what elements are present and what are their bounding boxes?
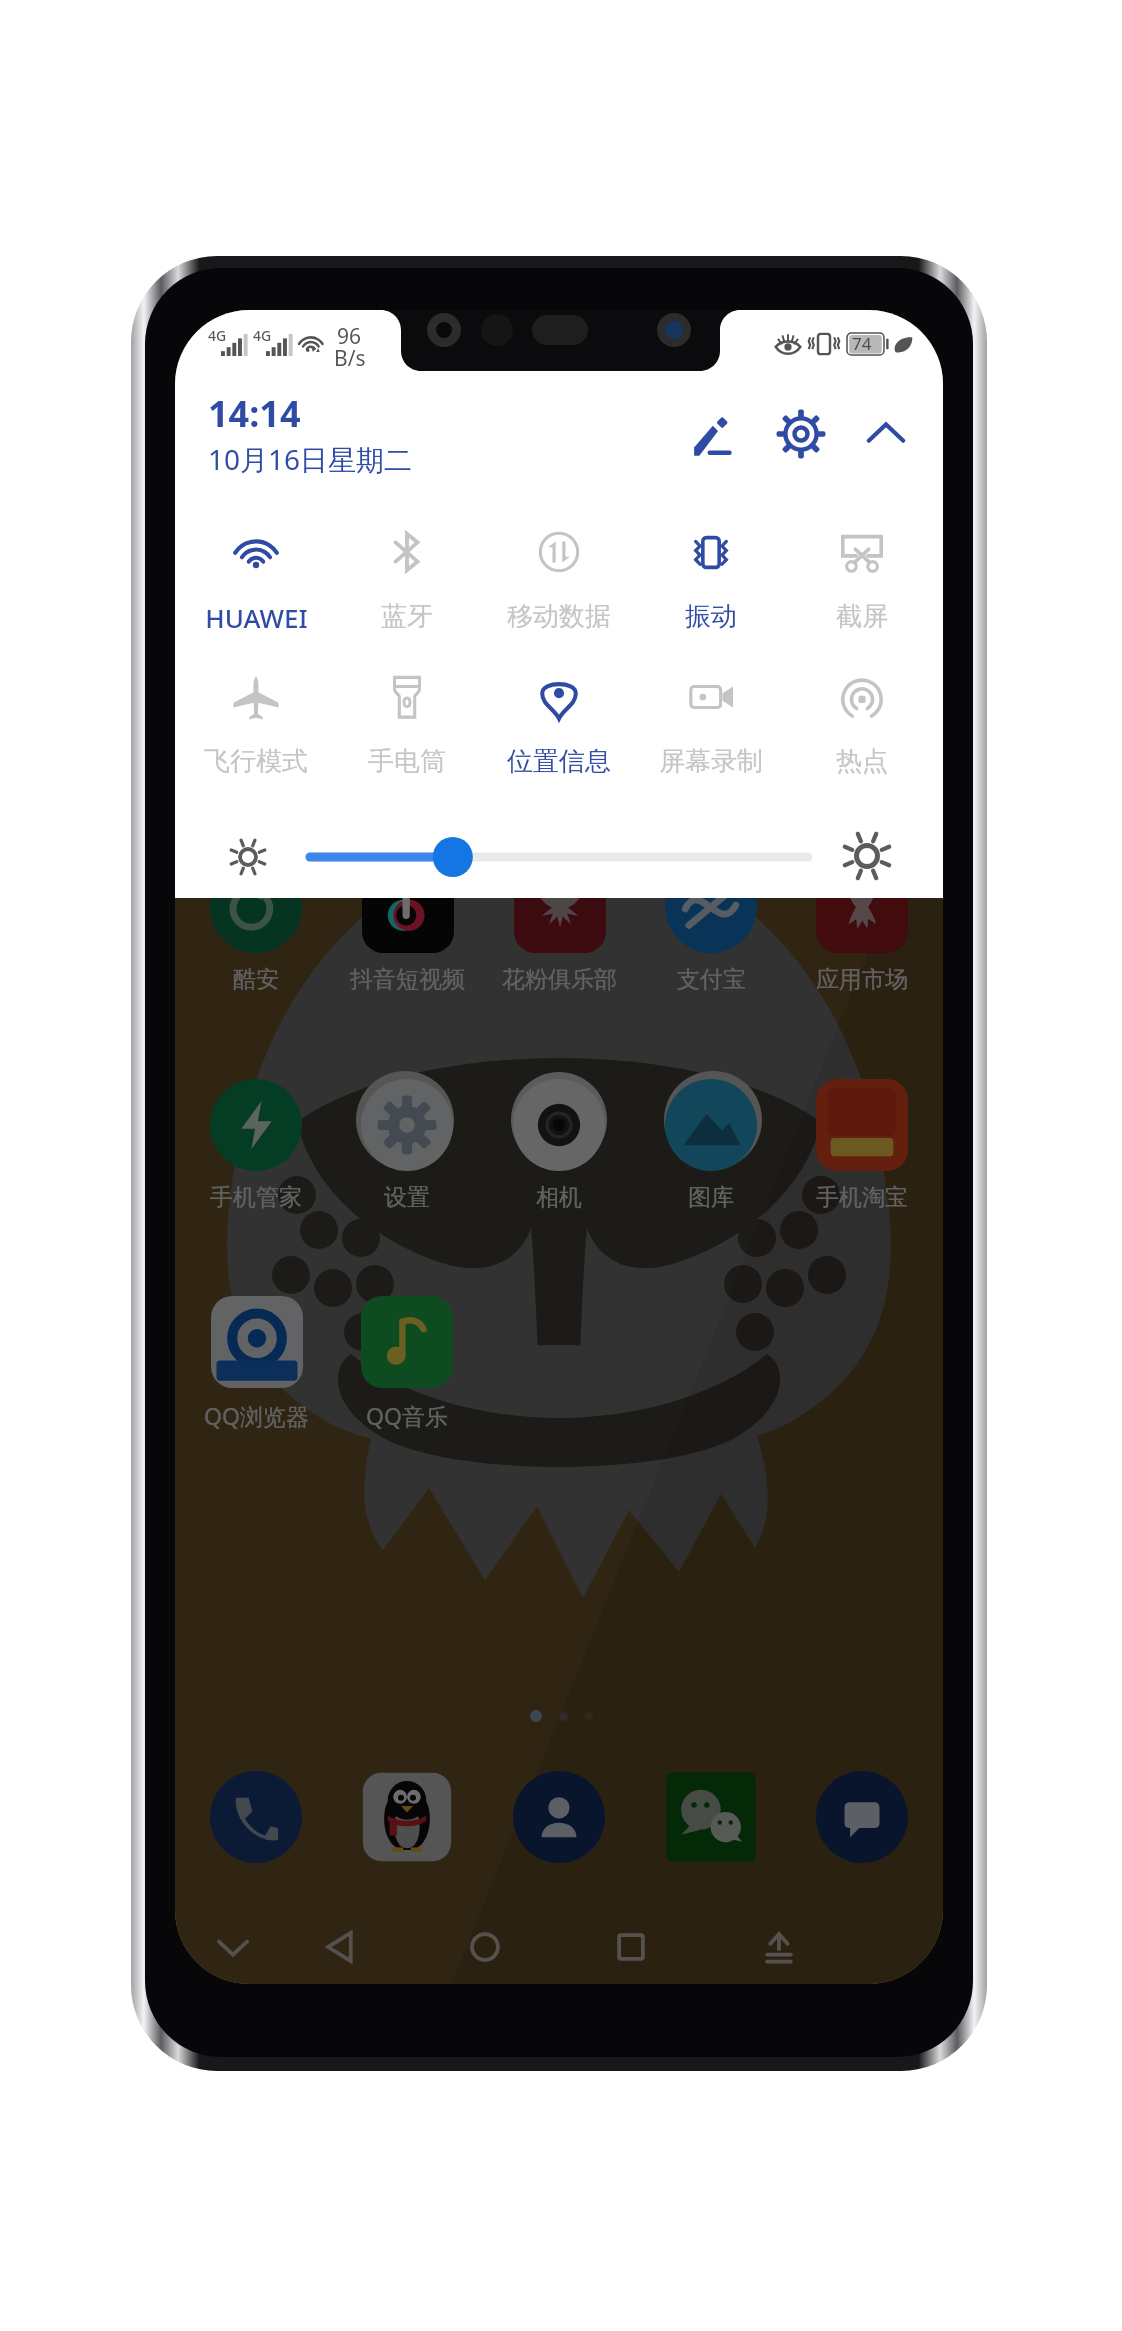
staticText: 相机: [536, 1183, 582, 1212]
button[interactable]: 飞行模式: [180, 658, 332, 782]
button[interactable]: down: [189, 1903, 277, 1984]
staticText: 手机管家: [210, 1183, 302, 1212]
button[interactable]: 屏幕录制: [635, 658, 787, 782]
button[interactable]: 相机: [487, 1079, 631, 1221]
button[interactable]: 振动: [635, 513, 787, 637]
staticText: 图库: [688, 1183, 734, 1212]
staticText: 蓝牙: [381, 600, 433, 633]
button[interactable]: 支付宝: [639, 861, 783, 1003]
button[interactable]: sms: [816, 1771, 908, 1863]
staticText: 14:14: [208, 389, 301, 438]
button[interactable]: 位置信息: [483, 658, 635, 782]
button[interactable]: 图库: [639, 1079, 783, 1221]
button[interactable]: contacts: [513, 1771, 605, 1863]
staticText: 屏幕录制: [659, 745, 763, 778]
button[interactable]: edit: [684, 401, 750, 467]
button[interactable]: 酷安: [184, 861, 328, 1003]
staticText: 4G: [208, 326, 227, 345]
staticText: 10月16日星期二: [208, 440, 413, 478]
button[interactable]: 花粉俱乐部: [487, 861, 631, 1003]
button[interactable]: 手机管家: [184, 1079, 328, 1221]
button[interactable]: 手电筒: [331, 658, 483, 782]
staticText: HUAWEI: [205, 600, 308, 635]
button[interactable]: qq: [361, 1771, 453, 1863]
staticText: 截屏: [836, 600, 888, 633]
staticText: 74: [852, 332, 872, 355]
button[interactable]: 截屏: [786, 513, 938, 637]
staticText: B/s: [334, 344, 366, 373]
button[interactable]: back: [296, 1903, 384, 1984]
staticText: 手电筒: [368, 745, 446, 778]
button[interactable]: [300, 833, 818, 881]
staticText: 飞行模式: [204, 745, 308, 778]
button[interactable]: updown: [735, 1903, 823, 1984]
staticText: 抖音短视频: [350, 965, 465, 994]
staticText: 应用市场: [816, 965, 908, 994]
button[interactable]: 手机淘宝: [790, 1079, 934, 1221]
button[interactable]: phone: [210, 1771, 302, 1863]
staticText: 设置: [384, 1183, 430, 1212]
button[interactable]: recents: [587, 1903, 675, 1984]
staticText: 位置信息: [507, 745, 611, 778]
button[interactable]: 应用市场: [790, 861, 934, 1003]
staticText: 支付宝: [677, 965, 746, 994]
button[interactable]: HUAWEI: [180, 513, 332, 637]
staticText: 移动数据: [507, 600, 611, 633]
staticText: QQ音乐: [366, 1400, 448, 1431]
button[interactable]: 移动数据: [483, 513, 635, 637]
staticText: 振动: [685, 600, 737, 633]
button[interactable]: 设置: [335, 1079, 479, 1221]
staticText: QQ浏览器: [204, 1400, 309, 1431]
button[interactable]: Increase brightness: [833, 822, 901, 890]
button[interactable]: home: [441, 1903, 529, 1984]
button[interactable]: 蓝牙: [331, 513, 483, 637]
staticText: 酷安: [233, 965, 279, 994]
button[interactable]: wechat: [665, 1771, 757, 1863]
button[interactable]: collapse: [853, 401, 919, 467]
button[interactable]: 热点: [786, 658, 938, 782]
staticText: 花粉俱乐部: [502, 965, 617, 994]
staticText: 手机淘宝: [816, 1183, 908, 1212]
button[interactable]: QQ音乐: [335, 1296, 479, 1438]
staticText: 热点: [836, 745, 888, 778]
staticText: 96: [337, 322, 362, 351]
staticText: 4G: [253, 326, 272, 345]
button[interactable]: 抖音短视频: [335, 861, 479, 1003]
button[interactable]: QQ浏览器: [184, 1296, 328, 1438]
button[interactable]: settings: [768, 401, 834, 467]
button[interactable]: Dim brightness: [218, 827, 278, 887]
